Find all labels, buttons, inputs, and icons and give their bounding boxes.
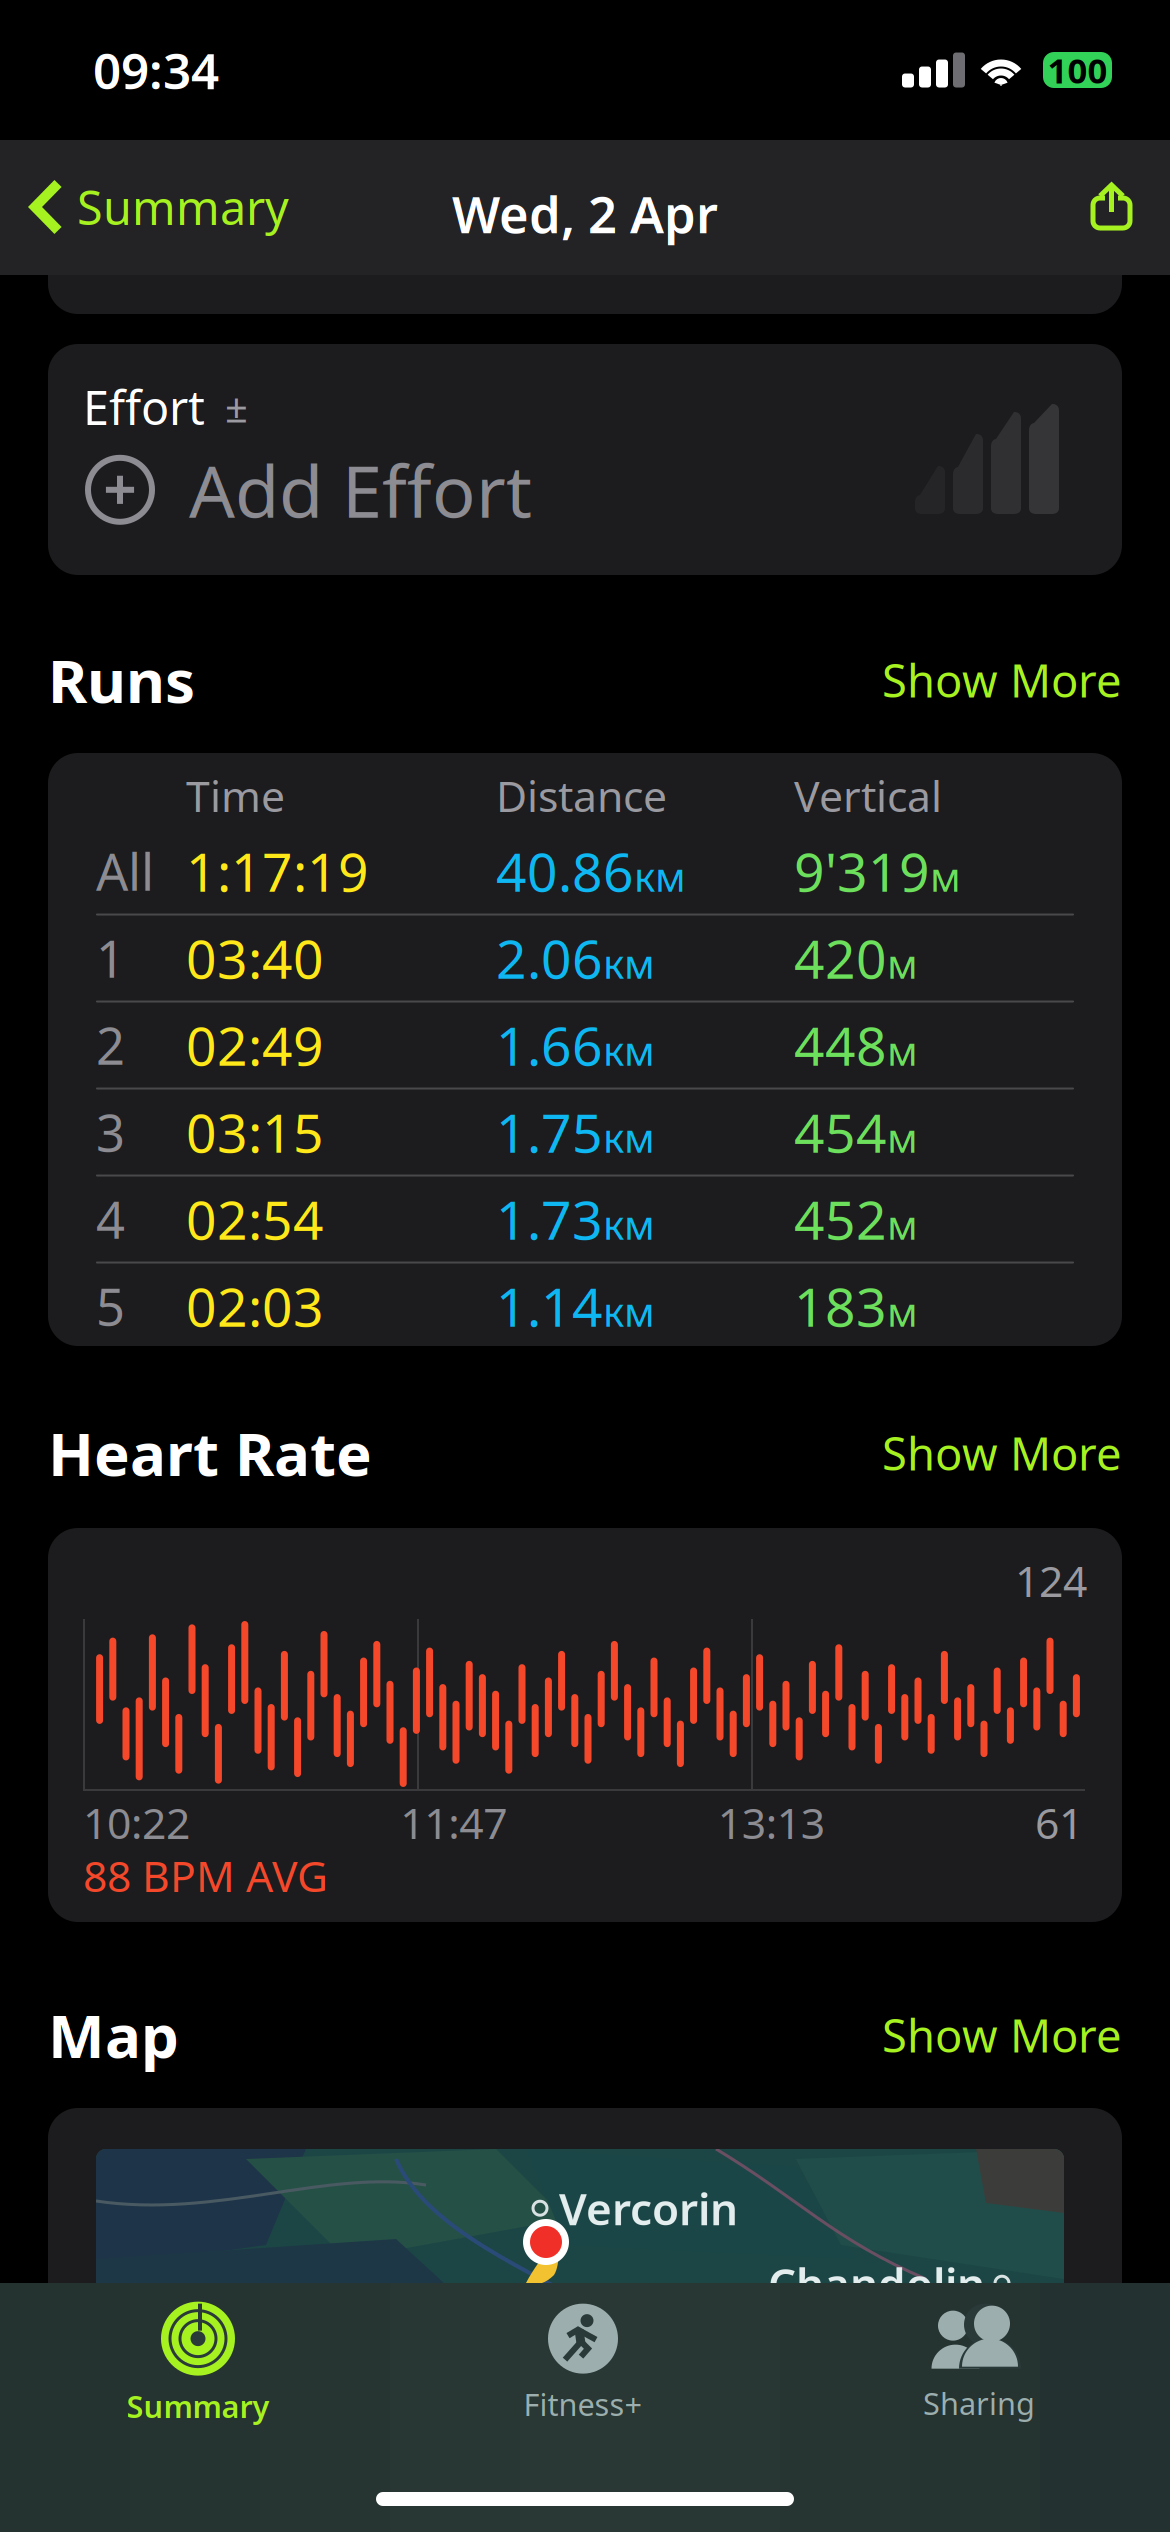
staticText: км bbox=[603, 1024, 655, 1077]
staticText: км bbox=[603, 1285, 655, 1338]
button[interactable]: Sharing bbox=[784, 2299, 1170, 2429]
staticText: 5 bbox=[96, 1272, 125, 1340]
staticText: 02:49 bbox=[186, 1010, 324, 1080]
staticText: Add Effort bbox=[189, 442, 532, 538]
button[interactable]: Fitness+ bbox=[388, 2299, 778, 2429]
staticText: 1.66 bbox=[496, 1010, 603, 1080]
staticText: Wed, 2 Apr bbox=[452, 180, 718, 247]
staticText: 02:54 bbox=[186, 1184, 324, 1254]
staticText: км bbox=[603, 937, 655, 990]
staticText: Summary bbox=[126, 2386, 269, 2426]
staticText: 02:03 bbox=[186, 1271, 324, 1341]
button[interactable]: Summary bbox=[0, 152, 289, 262]
button[interactable]: Summary bbox=[3, 2299, 393, 2429]
staticText: 1.75 bbox=[496, 1097, 603, 1167]
staticText: м bbox=[930, 850, 961, 903]
staticText: All bbox=[96, 837, 154, 905]
staticText: м bbox=[887, 937, 918, 990]
staticText: 3 bbox=[96, 1098, 125, 1166]
staticText: 420 bbox=[794, 923, 887, 993]
staticText: 1:17:19 bbox=[186, 836, 369, 906]
staticText: 448 bbox=[794, 1010, 887, 1080]
staticText: км bbox=[603, 1111, 655, 1164]
staticText: 100 bbox=[1047, 47, 1107, 93]
staticText: Heart Rate bbox=[48, 1413, 372, 1493]
button[interactable]: Show More bbox=[882, 1423, 1122, 1483]
staticText: Chandolin bbox=[768, 2254, 985, 2312]
staticText: Map bbox=[48, 1995, 179, 2075]
staticText: 454 bbox=[794, 1097, 887, 1167]
staticText: 2.06 bbox=[496, 923, 603, 993]
staticText: 61 bbox=[1035, 1794, 1083, 1851]
staticText: км bbox=[634, 850, 686, 903]
staticText: 03:15 bbox=[186, 1097, 324, 1167]
staticText: 10:22 bbox=[83, 1794, 190, 1851]
staticText: 88 BPM AVG bbox=[83, 1847, 328, 1904]
staticText: 13:13 bbox=[718, 1794, 825, 1851]
button[interactable]: Show More bbox=[882, 2005, 1122, 2065]
staticText: м bbox=[887, 1111, 918, 1164]
staticText: Effort bbox=[83, 376, 205, 438]
staticText: км bbox=[603, 1198, 655, 1251]
staticText: Show More bbox=[882, 1423, 1122, 1483]
staticText: 2 bbox=[96, 1011, 125, 1079]
staticText: Fitness+ bbox=[523, 2384, 642, 2424]
staticText: Time bbox=[186, 767, 285, 824]
staticText: м bbox=[887, 1285, 918, 1338]
staticText: 40.86 bbox=[496, 836, 634, 906]
staticText: Sharing bbox=[923, 2383, 1035, 2423]
button[interactable]: Share bbox=[1090, 162, 1170, 252]
staticText: 1.14 bbox=[496, 1271, 603, 1341]
staticText: 09:34 bbox=[93, 37, 219, 103]
staticText: 1.73 bbox=[496, 1184, 603, 1254]
staticText: 03:40 bbox=[186, 923, 324, 993]
staticText: м bbox=[887, 1198, 918, 1251]
staticText: Show More bbox=[882, 650, 1122, 710]
staticText: 183 bbox=[794, 1271, 887, 1341]
staticText: Show More bbox=[882, 2005, 1122, 2065]
staticText: ± bbox=[225, 380, 248, 433]
button[interactable]: Effort bbox=[48, 344, 1122, 575]
staticText: Runs bbox=[48, 640, 195, 720]
staticText: 124 bbox=[1015, 1552, 1087, 1609]
staticText: Vercorin bbox=[559, 2179, 738, 2237]
staticText: Summary bbox=[77, 176, 289, 238]
button[interactable]: Show More bbox=[882, 650, 1122, 710]
staticText: м bbox=[887, 1024, 918, 1077]
staticText: Distance bbox=[496, 767, 667, 824]
staticText: 4 bbox=[96, 1185, 125, 1253]
staticText: 11:47 bbox=[400, 1794, 507, 1851]
staticText: Vertical bbox=[794, 767, 942, 824]
staticText: 452 bbox=[794, 1184, 887, 1254]
staticText: 9'319 bbox=[794, 836, 930, 906]
staticText: 1 bbox=[96, 924, 125, 992]
